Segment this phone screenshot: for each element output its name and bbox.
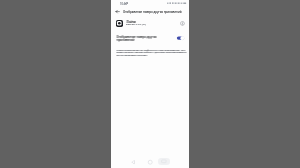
staticText: Отображение поверх других приложений	[123, 10, 193, 14]
staticText: Отображение поверх других приложений	[117, 35, 172, 42]
staticText: Лайка	[126, 20, 171, 24]
button[interactable]: Back	[113, 7, 122, 16]
staticText: Версия 2.4.6 (41)	[126, 22, 176, 25]
staticText: Лайка	[127, 20, 172, 24]
staticText: 10:44	[120, 2, 198, 6]
button[interactable]: Лайка	[111, 18, 189, 31]
staticText: Такое разрешение не требуется в этом при…	[117, 48, 187, 57]
button[interactable]: Home	[147, 159, 153, 165]
staticText: Версия 2.4.6 (41)	[126, 22, 176, 25]
staticText: 10:44	[120, 2, 198, 6]
button[interactable]: Recent apps	[158, 158, 170, 165]
button[interactable]: Back	[130, 159, 136, 165]
staticText: Отображение поверх других приложений	[116, 35, 171, 42]
staticText: Отображение поверх других приложений	[123, 10, 193, 14]
staticText: Такое разрешение не требуется в этом при…	[116, 48, 186, 57]
button[interactable]: App info	[180, 21, 185, 26]
button[interactable]: Отображение поверх других приложений	[111, 33, 189, 44]
